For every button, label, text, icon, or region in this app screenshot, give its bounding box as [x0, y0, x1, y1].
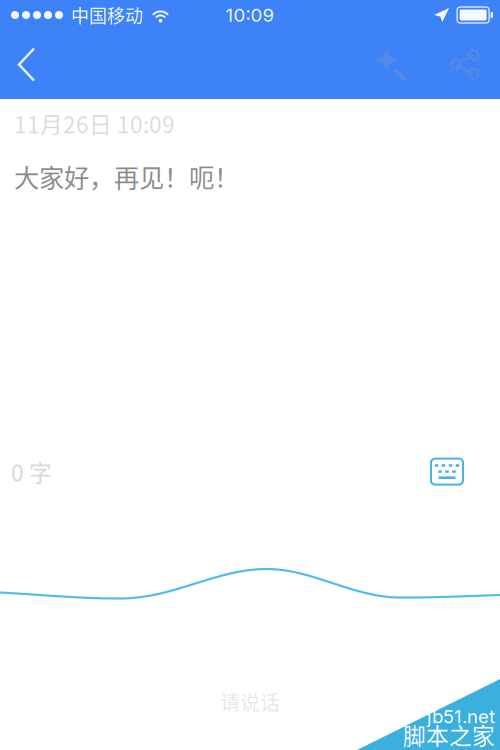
- staticText: 0 字: [11, 455, 52, 488]
- staticText: 请说话: [220, 687, 280, 716]
- button[interactable]: Switch to keyboard: [428, 456, 466, 488]
- staticText: 大家好，再见！呃！: [14, 158, 239, 194]
- button[interactable]: Back: [0, 30, 54, 98]
- button[interactable]: Beautify text: [364, 30, 428, 98]
- staticText: 中国移动: [71, 2, 143, 28]
- staticText: 脚本之家: [403, 718, 495, 750]
- staticText: 10:09: [225, 4, 274, 26]
- staticText: 11月26日 10:09: [14, 107, 175, 140]
- staticText: jb51.net: [427, 705, 495, 728]
- button[interactable]: Share: [428, 30, 500, 98]
